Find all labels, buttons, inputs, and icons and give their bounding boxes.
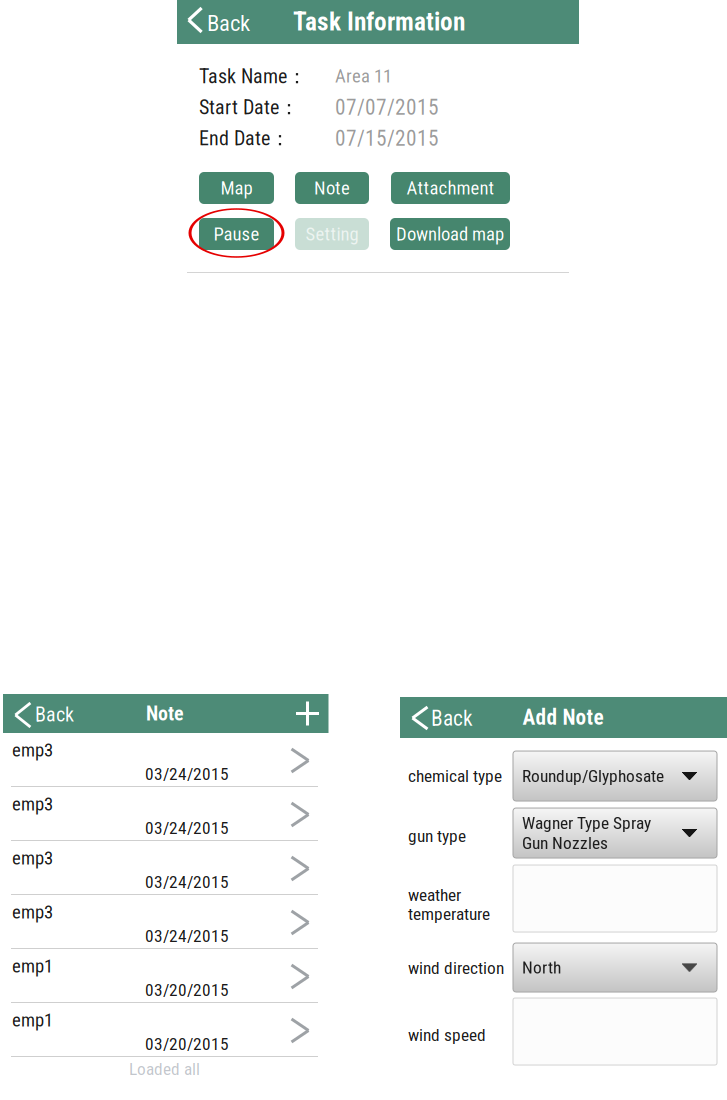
staticText: Note: [146, 702, 184, 725]
button[interactable]: Note: [295, 172, 369, 204]
staticText: 03/24/2015: [145, 926, 229, 946]
button[interactable]: Pause: [199, 218, 274, 250]
button[interactable]: North: [513, 943, 717, 992]
staticText: 07/07/2015: [335, 95, 439, 117]
staticText: End Date：: [199, 126, 290, 148]
staticText: gun type: [408, 826, 466, 846]
staticText: Area 11: [335, 65, 392, 87]
staticText: Note: [314, 177, 350, 199]
staticText: Roundup/Glyphosate: [522, 766, 664, 786]
staticText: emp3: [12, 901, 53, 923]
staticText: temperature: [408, 904, 490, 924]
staticText: wind direction: [408, 958, 504, 978]
staticText: Back: [35, 703, 74, 725]
staticText: 07/15/2015: [335, 126, 439, 148]
staticText: wind speed: [408, 1025, 486, 1045]
button[interactable]: Download map: [390, 218, 510, 250]
button[interactable]: Back: [3, 694, 98, 733]
button[interactable]: Attachment: [391, 172, 510, 204]
button[interactable]: Text field: [513, 998, 717, 1065]
staticText: 03/24/2015: [145, 764, 229, 784]
staticText: emp3: [12, 793, 53, 815]
button[interactable]: Add note: [286, 694, 328, 733]
staticText: emp1: [12, 955, 53, 977]
staticText: Map: [220, 177, 252, 199]
button[interactable]: emp3: [3, 895, 326, 949]
button[interactable]: Map: [199, 172, 274, 204]
staticText: Setting: [305, 223, 358, 245]
staticText: Attachment: [406, 177, 494, 199]
staticText: 03/24/2015: [145, 872, 229, 892]
button[interactable]: Roundup/Glyphosate: [513, 751, 717, 801]
staticText: Pause: [213, 223, 259, 245]
staticText: Task Information: [293, 7, 465, 33]
staticText: emp3: [12, 847, 53, 869]
staticText: North: [522, 957, 561, 978]
button[interactable]: emp3: [3, 841, 326, 895]
staticText: Gun Nozzles: [522, 833, 608, 853]
staticText: Task Name：: [199, 64, 307, 86]
staticText: Start Date：: [199, 95, 299, 117]
staticText: Add Note: [522, 705, 603, 729]
button[interactable]: Back: [400, 697, 500, 738]
staticText: Back: [207, 10, 250, 34]
staticText: Wagner Type Spray: [522, 813, 651, 833]
button[interactable]: emp3: [3, 787, 326, 841]
staticText: chemical type: [408, 766, 502, 786]
staticText: emp1: [12, 1009, 53, 1031]
button[interactable]: Text field: [513, 865, 717, 932]
staticText: Download map: [396, 223, 504, 245]
staticText: 03/24/2015: [145, 818, 229, 838]
button[interactable]: Back: [177, 0, 287, 44]
button[interactable]: emp3: [3, 733, 326, 787]
staticText: weather: [408, 885, 461, 905]
staticText: 03/20/2015: [145, 1034, 229, 1054]
staticText: 03/20/2015: [145, 980, 229, 1000]
button[interactable]: emp1: [3, 949, 326, 1003]
button[interactable]: Setting: [295, 218, 369, 250]
staticText: Loaded all: [129, 1059, 200, 1079]
button[interactable]: Wagner Type Spray: [513, 808, 717, 858]
staticText: emp3: [12, 739, 53, 761]
button[interactable]: emp1: [3, 1003, 326, 1057]
staticText: Back: [431, 706, 473, 729]
